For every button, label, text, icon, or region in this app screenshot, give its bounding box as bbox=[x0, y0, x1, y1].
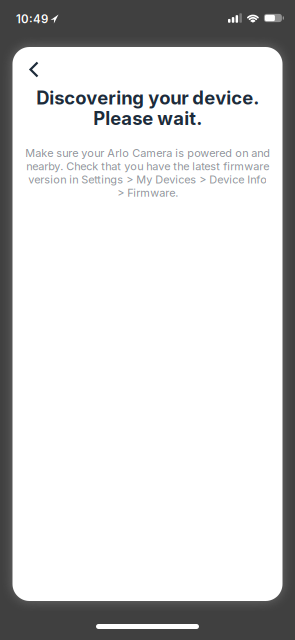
button[interactable]: Back bbox=[12, 47, 51, 82]
staticText: Discovering your device. Please wait. bbox=[36, 87, 259, 128]
staticText: Make sure your Arlo Camera is powered on… bbox=[25, 146, 270, 199]
staticText: 10:49 bbox=[16, 12, 48, 26]
